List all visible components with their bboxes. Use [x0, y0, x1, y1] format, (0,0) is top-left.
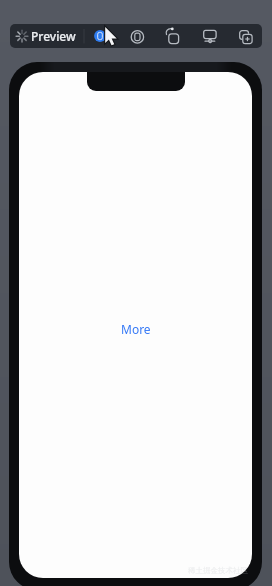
button[interactable]	[93, 29, 107, 43]
button[interactable]	[164, 27, 181, 44]
button[interactable]	[130, 29, 145, 44]
button[interactable]	[202, 28, 219, 44]
staticText: 稀土掘金技术社区	[188, 566, 248, 575]
button[interactable]: More	[121, 321, 151, 337]
staticText: More	[121, 321, 151, 337]
staticText: Preview	[31, 28, 76, 44]
button[interactable]: Preview	[10, 24, 82, 48]
button[interactable]	[238, 28, 254, 45]
